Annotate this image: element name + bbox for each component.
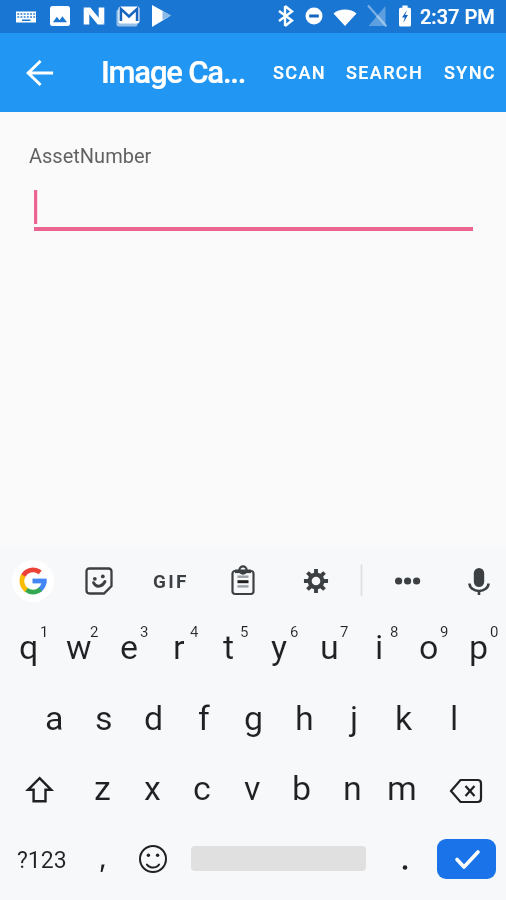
button[interactable]: q (3, 614, 53, 685)
staticText: g (244, 698, 264, 738)
staticText: 0 (490, 623, 499, 641)
button[interactable]: s (79, 685, 129, 756)
button[interactable]: Space (182, 826, 376, 891)
staticText: 9 (440, 623, 449, 641)
button[interactable]: Voice input (456, 558, 502, 604)
button[interactable]: Shift (0, 756, 77, 826)
staticText: p (469, 627, 489, 667)
button[interactable]: Period (376, 826, 433, 891)
button[interactable]: y (253, 614, 303, 685)
staticText: 3 (140, 623, 149, 641)
staticText: y (271, 627, 288, 667)
button[interactable]: ?123 (0, 826, 82, 891)
staticText: b (292, 768, 312, 808)
button[interactable]: SEARCH (336, 46, 434, 99)
button[interactable]: Settings (293, 558, 339, 604)
button[interactable]: z (77, 756, 127, 826)
button[interactable]: l (429, 685, 479, 756)
button[interactable]: h (279, 685, 329, 756)
staticText: 2 (90, 623, 99, 641)
button[interactable]: d (129, 685, 179, 756)
button[interactable]: k (379, 685, 429, 756)
button[interactable]: Enter (437, 839, 496, 879)
staticText: q (19, 627, 39, 667)
staticText: v (244, 768, 261, 808)
button[interactable]: c (177, 756, 227, 826)
staticText: n (343, 768, 362, 808)
staticText: Image Ca... (101, 54, 246, 90)
staticText: 8 (390, 623, 399, 641)
staticText: AssetNumber (29, 144, 152, 167)
staticText: GIF (153, 570, 189, 592)
staticText: SCAN (273, 62, 326, 83)
button[interactable]: p (453, 614, 503, 685)
button[interactable]: Comma (82, 826, 124, 891)
button[interactable]: m (377, 756, 427, 826)
button[interactable]: o (403, 614, 453, 685)
button[interactable]: Clipboard (220, 558, 266, 604)
staticText: 5 (240, 623, 249, 641)
staticText: x (144, 768, 161, 808)
staticText: SYNC (444, 62, 496, 83)
button[interactable]: u (303, 614, 353, 685)
button[interactable]: Emoji (124, 826, 182, 891)
staticText: l (450, 698, 459, 738)
staticText: t (223, 627, 235, 667)
button[interactable]: i (353, 614, 403, 685)
staticText: z (94, 768, 111, 808)
button[interactable]: t (203, 614, 253, 685)
staticText: 7 (340, 623, 349, 641)
button[interactable]: g (229, 685, 279, 756)
button[interactable]: v (227, 756, 277, 826)
button[interactable]: r (153, 614, 203, 685)
button[interactable]: Stickers (76, 558, 122, 604)
button[interactable]: f (179, 685, 229, 756)
staticText: 2:37 PM (420, 5, 495, 28)
button[interactable]: Backspace (427, 756, 506, 826)
staticText: 1 (40, 623, 49, 641)
staticText: i (375, 627, 384, 667)
button[interactable]: e (103, 614, 153, 685)
button[interactable]: Google search (12, 560, 54, 602)
button[interactable]: More options (385, 558, 431, 604)
staticText: e (120, 627, 139, 667)
staticText: j (350, 698, 359, 738)
staticText: c (193, 768, 211, 808)
button[interactable]: j (329, 685, 379, 756)
button[interactable]: x (127, 756, 177, 826)
staticText: r (173, 627, 185, 667)
staticText: h (295, 698, 314, 738)
button[interactable]: a (29, 685, 79, 756)
button[interactable]: SYNC (434, 46, 506, 99)
staticText: o (419, 627, 439, 667)
staticText: ?123 (17, 847, 67, 874)
button[interactable]: SCAN (263, 46, 336, 99)
button[interactable]: Back (14, 47, 65, 98)
staticText: w (66, 627, 92, 667)
staticText: f (198, 698, 210, 738)
button[interactable]: w (53, 614, 103, 685)
staticText: SEARCH (346, 62, 424, 83)
staticText: 4 (190, 623, 199, 641)
staticText: 6 (290, 623, 299, 641)
button[interactable]: GIF (144, 558, 196, 604)
staticText: d (144, 698, 164, 738)
button[interactable]: n (327, 756, 377, 826)
staticText: a (45, 698, 64, 738)
staticText: s (95, 698, 113, 738)
staticText: m (387, 768, 417, 808)
button[interactable]: b (277, 756, 327, 826)
staticText: k (395, 698, 413, 738)
staticText: u (320, 627, 339, 667)
